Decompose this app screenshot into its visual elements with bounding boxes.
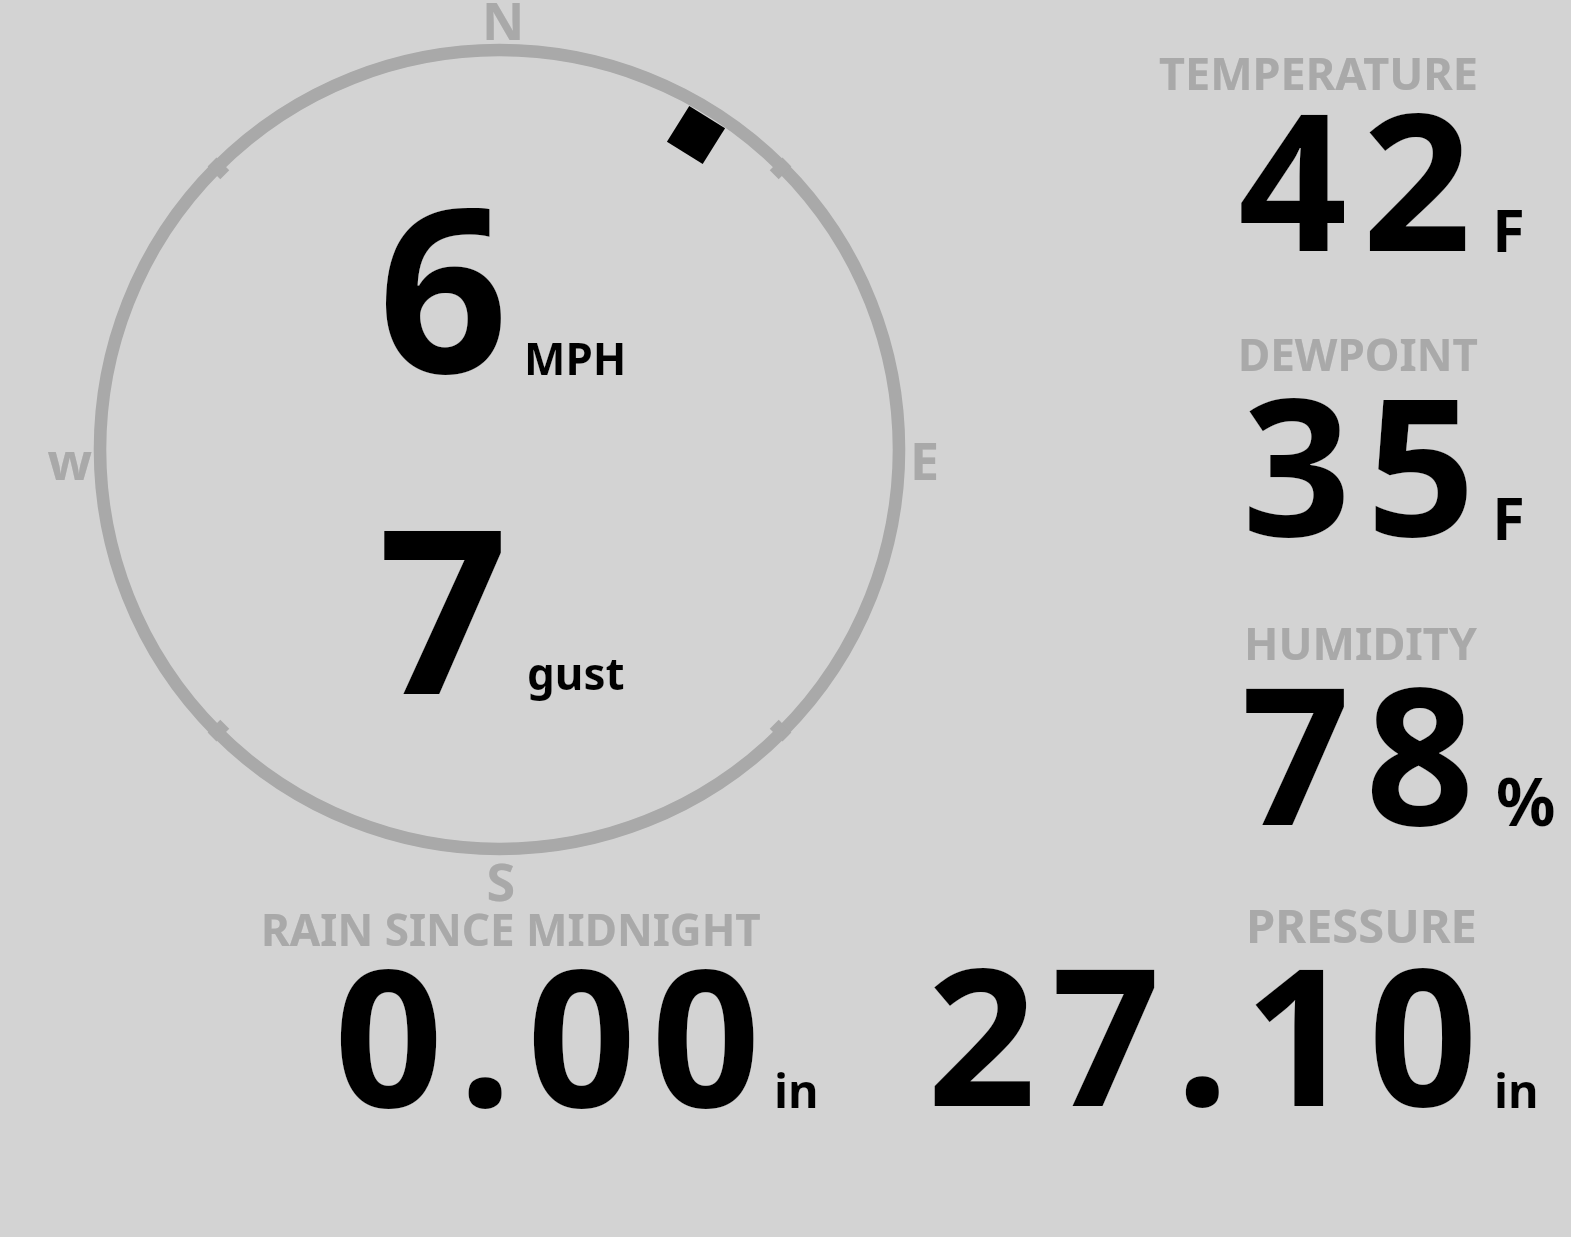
button[interactable]: Rain since midnight 0.00 in [180, 890, 860, 1140]
button[interactable]: Humidity 78 percent [1020, 590, 1571, 870]
button[interactable]: Dewpoint 35 F [1020, 300, 1571, 580]
button[interactable]: Temperature 42 F [1020, 20, 1571, 290]
button[interactable]: Pressure 27.10 in [880, 890, 1571, 1140]
button[interactable]: Wind direction and speed dial [0, 0, 1000, 900]
